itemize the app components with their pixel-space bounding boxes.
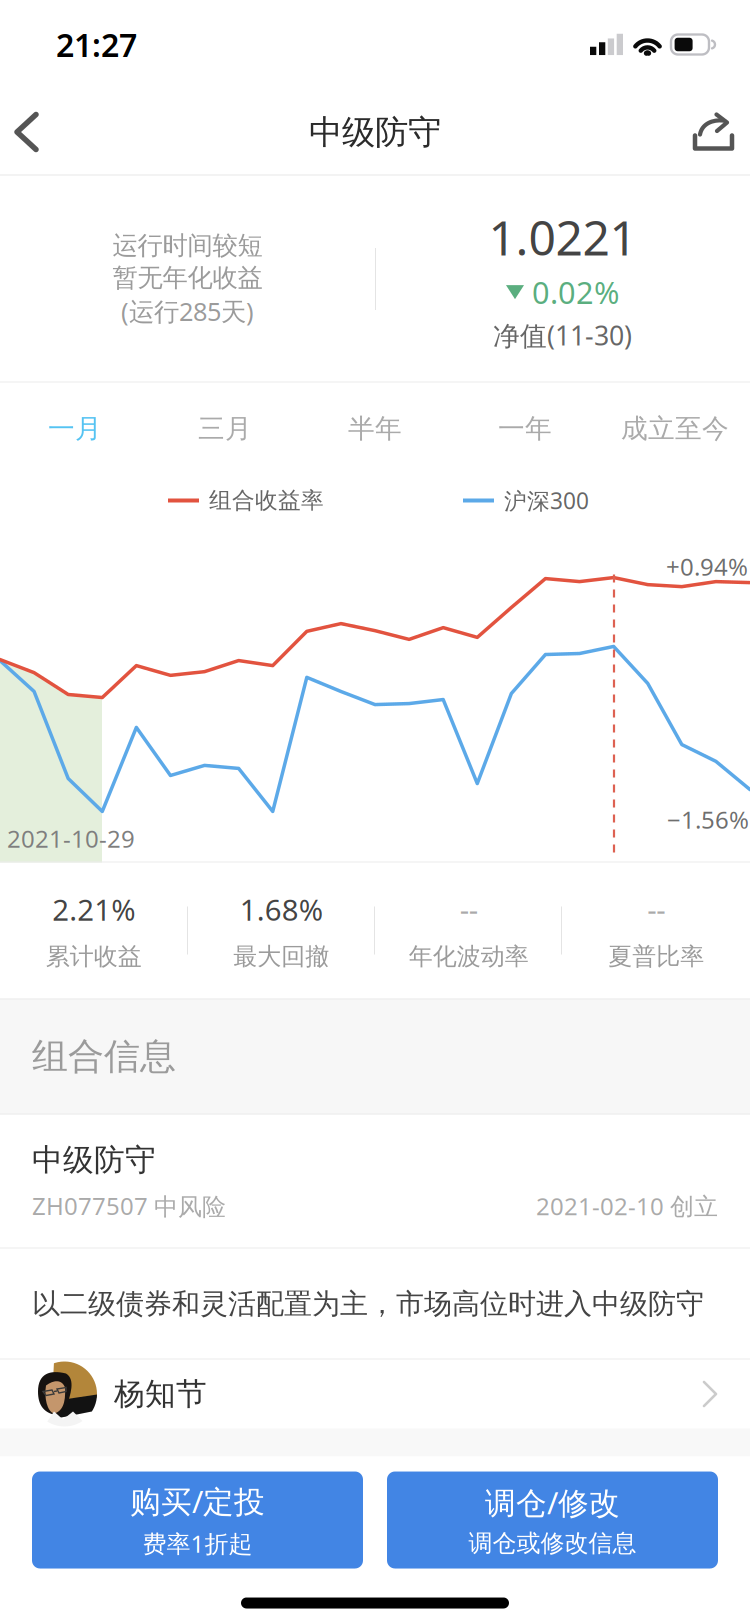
staticText: 购买/定投	[130, 1481, 265, 1521]
staticText: 1.68%	[240, 890, 323, 929]
staticText: 年化波动率	[409, 942, 529, 971]
staticText: 21:27	[56, 23, 137, 66]
staticText: 以二级债券和灵活配置为主，市场高位时进入中级防守	[32, 1287, 704, 1321]
staticText: --	[647, 890, 665, 929]
staticText: 组合收益率	[209, 487, 324, 514]
button[interactable]: Back	[0, 89, 62, 175]
staticText: 2.21%	[52, 890, 135, 929]
staticText: 最大回撤	[233, 942, 329, 971]
staticText: 1.0221	[488, 205, 636, 269]
staticText: 运行时间较短	[112, 230, 262, 261]
staticText: 成立至今	[621, 412, 729, 445]
staticText: −1.56%	[667, 803, 749, 835]
button[interactable]: 一月	[0, 382, 150, 474]
button[interactable]: Share	[670, 89, 750, 175]
button[interactable]: 调仓/修改	[387, 1471, 718, 1568]
staticText: 调仓或修改信息	[468, 1529, 636, 1558]
staticText: 一月	[48, 412, 102, 445]
button[interactable]: 三月	[150, 382, 300, 474]
staticText: 一年	[498, 412, 552, 445]
staticText: 三月	[198, 412, 252, 445]
staticText: 暂无年化收益	[112, 262, 262, 293]
button[interactable]: 购买/定投	[32, 1471, 363, 1568]
staticText: 累计收益	[46, 942, 142, 971]
button[interactable]: 成立至今	[600, 382, 750, 474]
staticText: 0.02%	[532, 272, 619, 312]
staticText: (运行285天)	[121, 294, 254, 328]
button[interactable]: 一年	[450, 382, 600, 474]
staticText: 杨知节	[114, 1375, 207, 1413]
staticText: 调仓/修改	[485, 1482, 620, 1523]
staticText: 夏普比率	[608, 942, 704, 971]
button[interactable]: 杨知节	[0, 1359, 750, 1428]
staticText: 组合信息	[32, 1034, 176, 1079]
staticText: 中级防守	[309, 112, 441, 153]
staticText: 半年	[348, 412, 402, 445]
staticText: +0.94%	[666, 550, 748, 582]
staticText: 费率1折起	[142, 1527, 252, 1559]
staticText: 中级防守	[32, 1141, 156, 1179]
button[interactable]: 半年	[300, 382, 450, 474]
staticText: 2021-10-29	[7, 822, 135, 854]
staticText: ZH077507 中风险	[32, 1190, 226, 1222]
staticText: 2021-02-10 创立	[536, 1190, 718, 1222]
button[interactable]: 中级防守	[0, 1114, 750, 1248]
staticText: 净值(11-30)	[493, 317, 632, 353]
staticText: --	[460, 890, 478, 929]
staticText: 沪深300	[504, 485, 589, 515]
